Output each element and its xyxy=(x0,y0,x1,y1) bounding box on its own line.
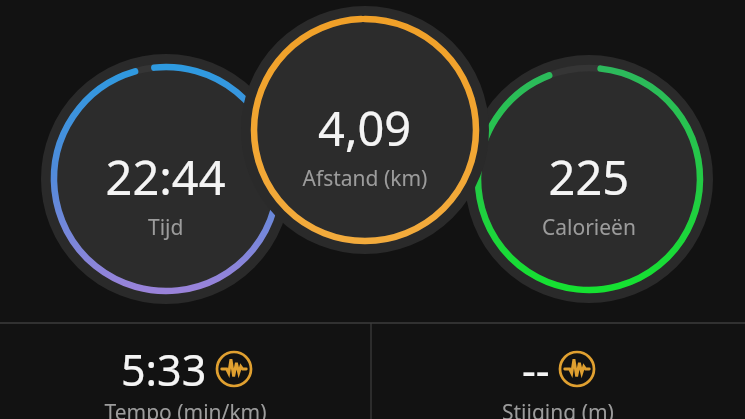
button[interactable]: Workout summary statistics xyxy=(0,0,745,419)
